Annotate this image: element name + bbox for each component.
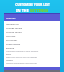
button[interactable]: Change theme [4,26,60,30]
button[interactable]: Backup [4,46,60,52]
staticText: Backup [6,47,15,50]
button[interactable]: Sync [4,52,60,58]
staticText: Automatic backup to your account [6,50,39,52]
staticText: Settings [6,16,16,19]
staticText: Choose sound [6,31,22,34]
button[interactable]: Sort order [4,38,60,42]
staticText: Text size [6,35,16,38]
staticText: About [6,59,13,62]
button[interactable]: Text size [4,34,60,38]
button[interactable]: Show hidden [4,42,60,46]
staticText: IN THE [16,8,30,13]
button[interactable]: Manage list [4,22,60,26]
staticText: Sync [6,53,12,56]
button[interactable]: Choose sound [4,30,60,34]
staticText: Change theme [6,27,23,30]
staticText: SETTINGS [30,8,49,13]
staticText: Manage list [6,23,19,26]
button[interactable]: Settings [4,14,60,21]
staticText: Sort order [6,39,18,42]
button[interactable]: About [4,58,60,64]
staticText: Version information and licences [6,62,37,64]
staticText: CUSTOMISE YOUR LIST [15,3,50,7]
staticText: Keep your lists in sync on devices [6,56,38,58]
staticText: Show hidden [6,43,21,46]
